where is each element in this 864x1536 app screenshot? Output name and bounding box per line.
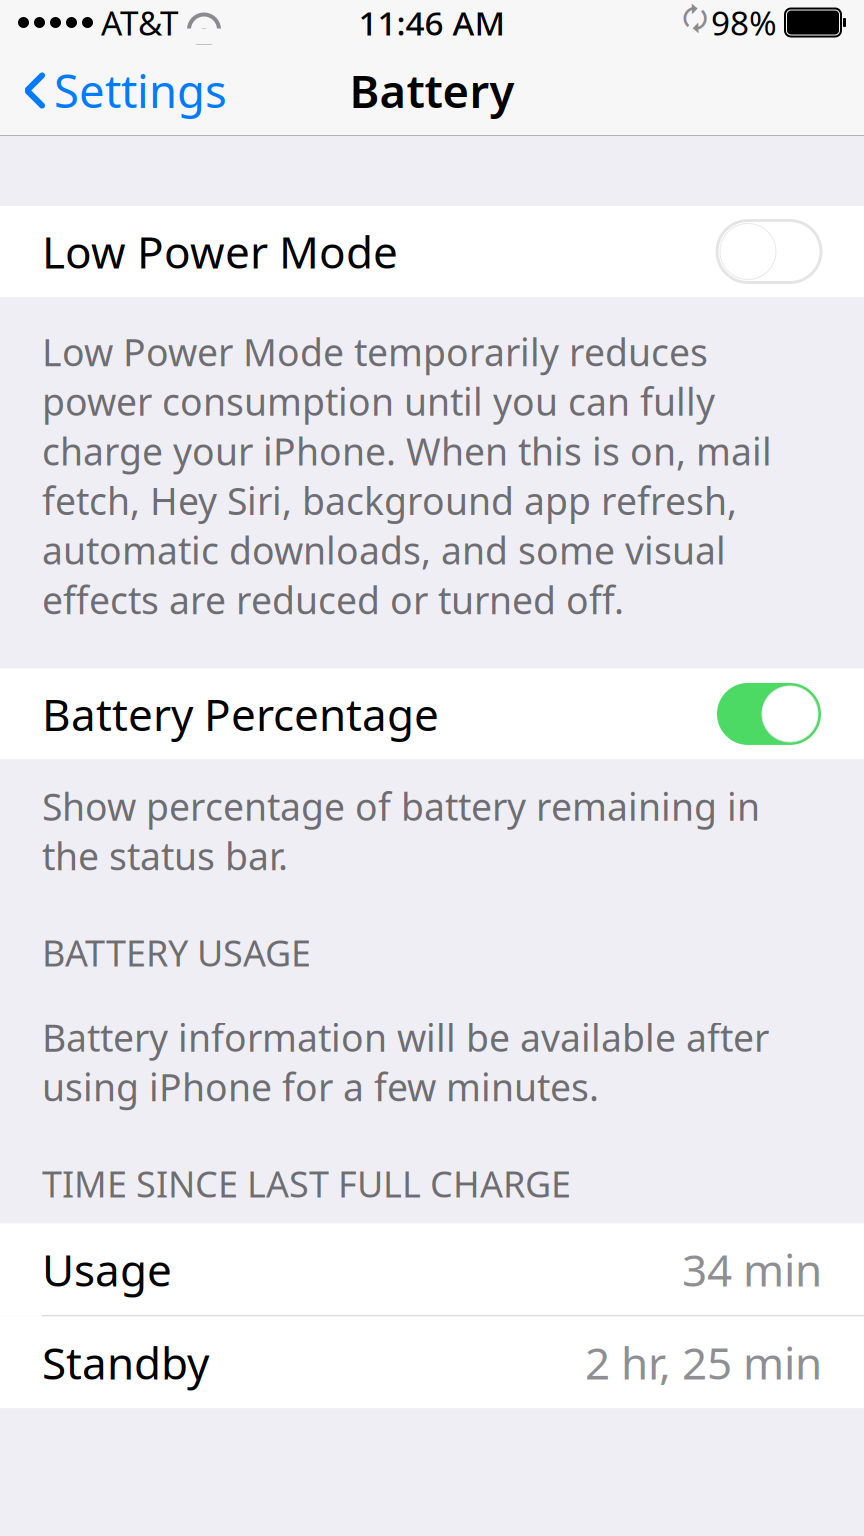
staticText: 34 min bbox=[682, 1240, 822, 1299]
staticText: Battery Percentage bbox=[42, 685, 439, 743]
staticText: Usage bbox=[42, 1240, 172, 1299]
button[interactable]: Low Power Mode bbox=[0, 206, 864, 297]
staticText: Standby bbox=[42, 1333, 209, 1392]
staticText: Battery information will be available af… bbox=[42, 1012, 769, 1112]
staticText: Settings bbox=[54, 60, 227, 121]
staticText: BATTERY USAGE bbox=[42, 929, 311, 976]
staticText: 11:46 AM bbox=[358, 0, 505, 45]
staticText: Low Power Mode bbox=[42, 222, 398, 281]
staticText: Battery bbox=[349, 60, 514, 121]
staticText: 🗘 bbox=[682, 0, 708, 47]
staticText: Low Power Mode temporarily reduces power… bbox=[42, 327, 772, 624]
staticText: Show percentage of battery remaining in … bbox=[42, 781, 760, 881]
staticText: 98% bbox=[711, 0, 777, 45]
button[interactable]: Settings bbox=[0, 50, 227, 131]
button[interactable]: Battery Percentage bbox=[0, 668, 864, 759]
staticText: AT&T bbox=[101, 0, 179, 45]
staticText: TIME SINCE LAST FULL CHARGE bbox=[42, 1160, 571, 1207]
staticText: 2 hr, 25 min bbox=[585, 1333, 822, 1392]
